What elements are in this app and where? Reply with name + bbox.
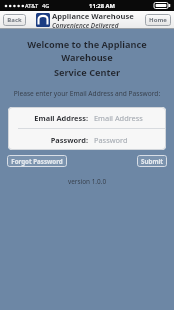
button[interactable]: Email Address: [8, 107, 166, 128]
staticText: Convenience Delivered [52, 21, 119, 29]
button[interactable]: Forgot Password [7, 155, 67, 167]
staticText: Please enter your Email Address and Pass… [0, 89, 174, 98]
staticText: Email Address: [16, 113, 88, 123]
staticText: Home [149, 16, 167, 24]
staticText: 4G [42, 2, 50, 10]
staticText: Password [94, 135, 128, 145]
button[interactable]: Back [3, 14, 26, 26]
staticText: AT&T [25, 2, 39, 10]
staticText: version 1.0.0 [0, 177, 174, 186]
staticText: Back [7, 16, 22, 24]
button[interactable]: Home [145, 14, 171, 26]
staticText: Forgot Password [11, 157, 63, 165]
staticText: Appliance Warehouse [52, 11, 134, 21]
staticText: Welcome to the Appliance Warehouse [6, 38, 168, 64]
staticText: Password: [16, 135, 88, 145]
button[interactable]: Submit [137, 155, 167, 167]
button[interactable]: Password: [8, 129, 166, 150]
staticText: 11:28 AM [89, 2, 115, 10]
staticText: Email Address [94, 113, 143, 123]
staticText: Submit [141, 157, 163, 165]
staticText: Service Center [0, 66, 174, 79]
